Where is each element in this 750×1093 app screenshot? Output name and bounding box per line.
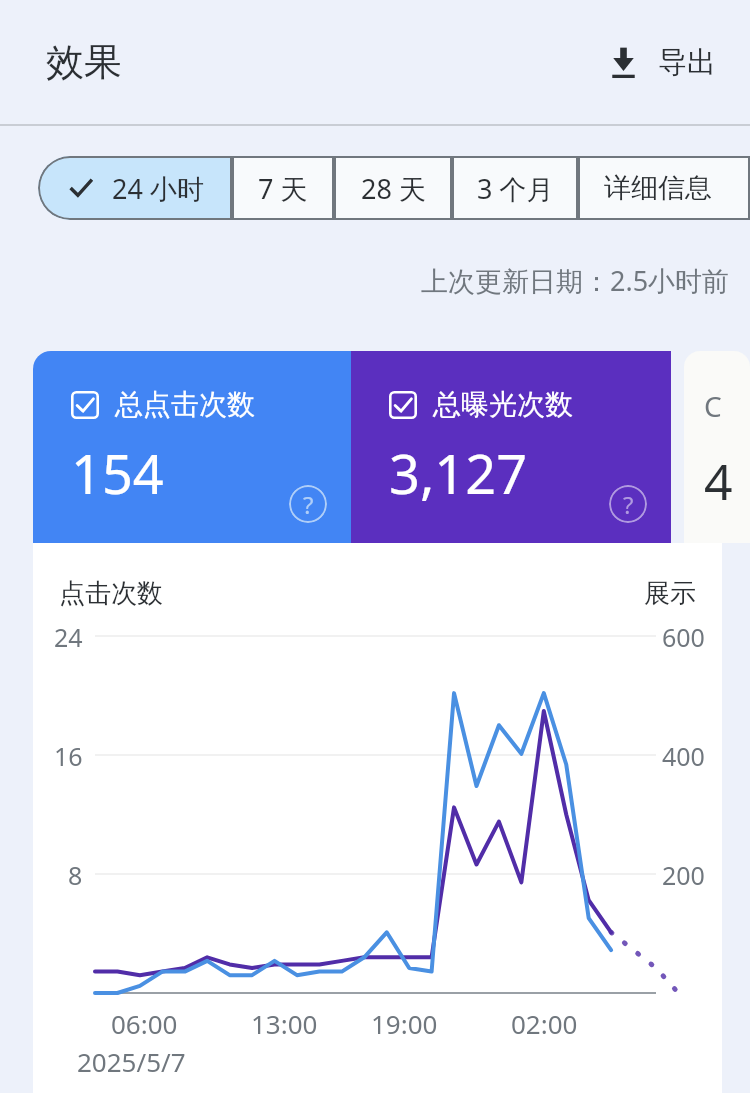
staticText: 154 [71, 436, 164, 510]
staticText: 24 小时 [112, 170, 204, 207]
button[interactable]: 详细信息 [578, 156, 750, 220]
staticText: 2025/5/7 [77, 1044, 186, 1079]
button[interactable]: 总曝光次数 [351, 351, 671, 543]
staticText: 4 [704, 447, 733, 515]
staticText: C [704, 387, 722, 425]
staticText: ? [303, 488, 314, 521]
staticText: ? [623, 488, 634, 521]
staticText: 28 天 [361, 170, 426, 207]
button[interactable]: 24 小时 [38, 156, 232, 220]
staticText: 总曝光次数 [433, 387, 573, 422]
staticText: 点击次数 [59, 577, 163, 610]
staticText: 8 [68, 858, 83, 892]
staticText: 导出 [658, 44, 716, 81]
button[interactable]: Help [289, 485, 327, 523]
staticText: 24 [54, 620, 83, 654]
other: Export [607, 46, 640, 79]
staticText: 总点击次数 [115, 387, 255, 422]
button[interactable]: C [684, 351, 750, 543]
button[interactable]: Export [595, 34, 728, 91]
staticText: 3 个月 [477, 170, 554, 207]
staticText: 效果 [46, 38, 122, 86]
staticText: 展示 [644, 577, 696, 610]
staticText: 02:00 [511, 1006, 578, 1041]
staticText: 上次更新日期：2.5小时前 [421, 262, 730, 299]
button[interactable]: 28 天 [334, 156, 452, 220]
button[interactable]: 3 个月 [452, 156, 578, 220]
staticText: 3,127 [389, 436, 528, 510]
staticText: 详细信息 [604, 171, 712, 205]
staticText: 600 [662, 620, 705, 654]
staticText: 13:00 [251, 1006, 318, 1041]
button[interactable]: 7 天 [232, 156, 334, 220]
staticText: 200 [662, 858, 705, 892]
staticText: 400 [662, 739, 705, 773]
staticText: 16 [54, 739, 83, 773]
button[interactable]: 总点击次数 [33, 351, 351, 543]
staticText: 19:00 [371, 1006, 438, 1041]
button[interactable]: Help [609, 485, 647, 523]
staticText: 7 天 [258, 170, 308, 207]
staticText: 06:00 [111, 1006, 178, 1041]
